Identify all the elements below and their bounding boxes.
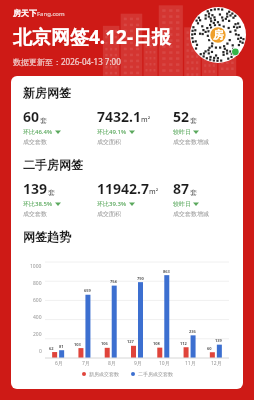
staticText: 9月 bbox=[134, 360, 142, 367]
staticText: 6月 bbox=[55, 360, 63, 367]
staticText: 108 bbox=[153, 341, 160, 346]
staticText: m² bbox=[149, 187, 159, 197]
staticText: 房 bbox=[213, 28, 224, 42]
staticText: 139 bbox=[215, 338, 222, 343]
staticText: 112 bbox=[180, 341, 187, 346]
staticText: 环比49.1% bbox=[97, 128, 127, 136]
staticText: 套 bbox=[40, 116, 47, 125]
staticText: 环比46.4% bbox=[23, 128, 53, 136]
staticText: 套 bbox=[190, 188, 197, 197]
staticText: 863 bbox=[163, 269, 170, 274]
staticText: 网签趋势 bbox=[23, 229, 71, 244]
staticText: 600 bbox=[33, 297, 42, 304]
staticText: 11月 bbox=[185, 360, 196, 367]
staticText: 0 bbox=[39, 348, 42, 355]
staticText: 106 bbox=[101, 341, 108, 346]
staticText: 87 bbox=[173, 179, 190, 198]
staticText: 1000 bbox=[30, 263, 42, 270]
button[interactable]: 扫码关注公众号二维码 bbox=[190, 7, 246, 63]
staticText: 8月 bbox=[108, 360, 116, 367]
staticText: 10月 bbox=[159, 360, 170, 367]
staticText: 659 bbox=[84, 288, 91, 293]
staticText: 成交面积 bbox=[97, 210, 121, 218]
staticText: m² bbox=[141, 115, 151, 125]
staticText: 790 bbox=[137, 276, 144, 281]
staticText: 环比39.3% bbox=[97, 200, 127, 208]
staticText: 800 bbox=[33, 280, 42, 287]
staticText: 7月 bbox=[82, 360, 90, 367]
staticText: Fang.com bbox=[37, 10, 65, 18]
staticText: 较昨日 bbox=[173, 128, 191, 136]
staticText: 新房网签 bbox=[23, 85, 71, 100]
button[interactable]: 二手房网签 bbox=[23, 157, 231, 218]
staticText: 127 bbox=[127, 339, 134, 344]
staticText: 400 bbox=[33, 314, 42, 321]
staticText: 二手房成交套数 bbox=[138, 371, 173, 377]
staticText: 成交套数增减 bbox=[173, 210, 209, 218]
staticText: 二手房网签 bbox=[23, 157, 83, 172]
staticText: 236 bbox=[189, 329, 196, 334]
staticText: 103 bbox=[74, 342, 81, 347]
staticText: 环比38.5% bbox=[23, 200, 53, 208]
staticText: 成交套数 bbox=[23, 210, 47, 218]
staticText: 较昨日 bbox=[173, 200, 191, 208]
staticText: 套 bbox=[190, 116, 197, 125]
staticText: 新房成交套数 bbox=[89, 371, 119, 377]
staticText: 200 bbox=[33, 331, 42, 338]
staticText: 7432.1 bbox=[97, 107, 141, 126]
staticText: 60 bbox=[23, 107, 40, 126]
staticText: 房天下 bbox=[13, 8, 37, 18]
staticText: 数据更新至：2026-04-13 7:00 bbox=[13, 56, 121, 67]
staticText: 成交套数增减 bbox=[173, 138, 209, 146]
staticText: 11942.7 bbox=[97, 179, 149, 198]
staticText: 754 bbox=[110, 279, 117, 284]
staticText: 套 bbox=[48, 188, 55, 197]
button[interactable]: 新房网签 bbox=[23, 85, 231, 146]
staticText: 139 bbox=[23, 179, 48, 198]
staticText: 52 bbox=[173, 107, 190, 126]
staticText: 12月 bbox=[211, 360, 222, 367]
staticText: 成交面积 bbox=[97, 138, 121, 146]
staticText: 成交套数 bbox=[23, 138, 47, 146]
staticText: 北京网签4.12-日报 bbox=[13, 24, 172, 50]
staticText: 81 bbox=[59, 344, 64, 349]
staticText: 62 bbox=[49, 346, 54, 351]
staticText: 60 bbox=[207, 346, 212, 351]
